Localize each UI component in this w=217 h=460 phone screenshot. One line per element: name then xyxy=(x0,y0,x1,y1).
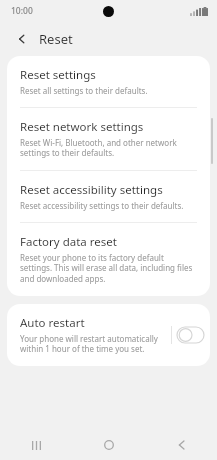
staticText: Reset all settings to their defaults. xyxy=(20,85,148,96)
button[interactable]: Auto restart xyxy=(7,304,210,366)
button[interactable]: Recent apps xyxy=(0,430,73,460)
staticText: Reset Wi-Fi, Bluetooth, and other networ… xyxy=(20,137,196,159)
staticText: Reset accessibility settings to their de… xyxy=(20,200,184,211)
staticText: Reset settings xyxy=(20,67,96,83)
staticText: Reset network settings xyxy=(20,119,144,135)
staticText: Auto restart xyxy=(20,315,85,331)
button[interactable]: Reset network settings xyxy=(7,108,210,170)
staticText: Your phone will restart automatically wi… xyxy=(20,333,166,355)
button[interactable]: Reset accessibility settings xyxy=(7,171,210,222)
button[interactable]: Reset settings xyxy=(7,56,210,107)
staticText: Reset accessibility settings xyxy=(20,182,163,198)
staticText: 10:00 xyxy=(11,5,33,17)
button[interactable]: Back xyxy=(145,430,217,460)
button[interactable]: Home xyxy=(73,430,145,460)
button[interactable]: Back xyxy=(11,28,33,50)
staticText: Factory data reset xyxy=(20,234,117,250)
staticText: Reset your phone to its factory default … xyxy=(20,252,196,285)
button[interactable]: Factory data reset xyxy=(7,223,210,296)
staticText: Reset xyxy=(39,30,73,48)
button[interactable]: Auto restart toggle xyxy=(177,327,204,343)
